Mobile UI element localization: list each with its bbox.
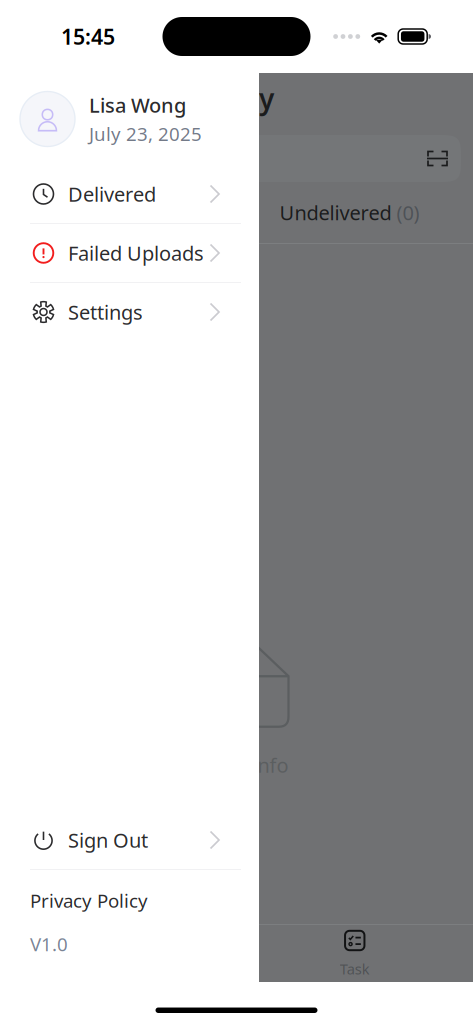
button[interactable]: Delivery	[0, 925, 236, 982]
staticText: Failed Uploads	[68, 240, 204, 266]
button[interactable]: Settings	[0, 283, 259, 341]
button[interactable]: Delivered	[0, 165, 259, 223]
staticText: July 23, 2025	[89, 121, 202, 146]
staticText: Delivered	[68, 181, 156, 207]
button[interactable]: Task	[236, 925, 473, 982]
staticText: Task	[340, 959, 370, 978]
staticText: Lisa Wong	[89, 92, 186, 118]
staticText: Delivery	[164, 80, 274, 117]
staticText: Sign Out	[68, 827, 148, 853]
button[interactable]: Undelivered	[233, 182, 466, 243]
staticText: 15:45	[61, 22, 115, 51]
button[interactable]: Privacy Policy	[0, 870, 259, 931]
staticText: No Delivery Info	[138, 752, 288, 778]
staticText: Privacy Policy	[30, 888, 148, 913]
staticText: (0)	[396, 199, 419, 226]
staticText: (0)	[151, 199, 174, 226]
staticText: V1.0	[30, 932, 68, 956]
staticText: Settings	[68, 299, 143, 325]
button[interactable]: Failed Uploads	[0, 224, 259, 282]
staticText: Undelivered	[279, 199, 391, 226]
button[interactable]: Sign Out	[0, 811, 259, 869]
staticText: Delivered	[58, 199, 146, 226]
button[interactable]: Delivered	[0, 182, 233, 243]
